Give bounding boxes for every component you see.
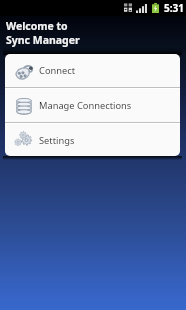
button[interactable]: Settings: [5, 124, 180, 156]
button[interactable]: Manage Connections: [5, 89, 180, 122]
staticText: Connect: [39, 64, 76, 77]
staticText: Sync Manager: [6, 33, 80, 47]
staticText: Settings: [39, 134, 75, 147]
staticText: Welcome to: [6, 19, 68, 33]
staticText: Manage Connections: [39, 99, 132, 112]
staticText: 5:31: [164, 1, 184, 15]
button[interactable]: Connect: [5, 54, 180, 87]
